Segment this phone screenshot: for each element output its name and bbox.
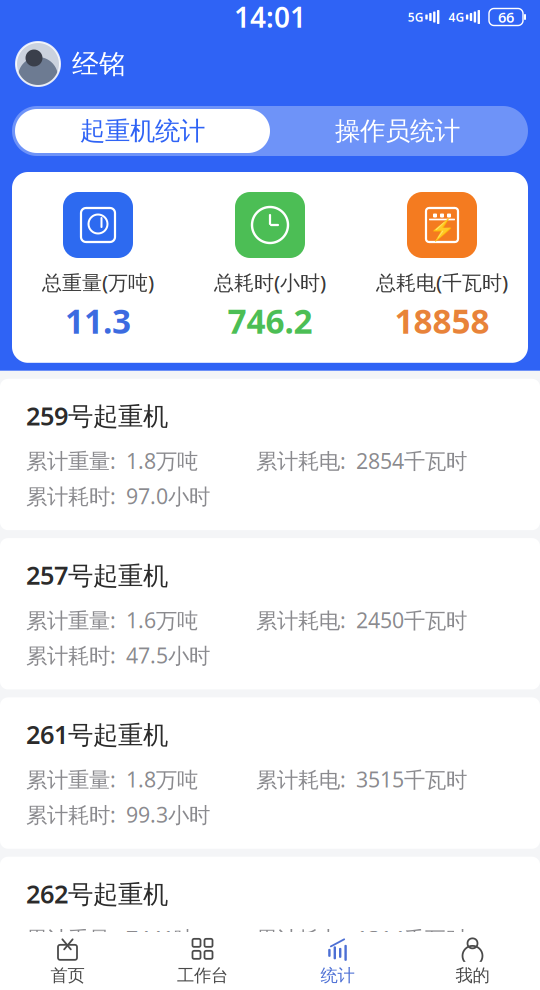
staticText: 总重量(万吨) xyxy=(42,269,154,296)
staticText: 257号起重机 xyxy=(26,558,168,592)
staticText: 262号起重机 xyxy=(26,877,168,910)
staticText: 操作员统计 xyxy=(335,115,460,146)
staticText: 累计耗电: xyxy=(256,924,346,953)
staticText: 259号起重机 xyxy=(26,399,168,432)
button[interactable]: 261号起重机 xyxy=(0,697,540,849)
staticText: 47.5小时 xyxy=(126,641,210,669)
staticText: 统计 xyxy=(320,965,354,986)
staticText: 经铭 xyxy=(72,48,126,80)
staticText: 起重机统计 xyxy=(80,115,205,146)
staticText: 1.8万吨 xyxy=(126,446,198,475)
button[interactable]: 操作员统计 xyxy=(270,109,525,153)
button[interactable]: 257号起重机 xyxy=(0,538,540,689)
staticText: 14:01 xyxy=(234,0,306,36)
staticText: 累计耗时: xyxy=(26,641,116,669)
staticText: 746.2 xyxy=(227,299,312,343)
staticText: 66 xyxy=(498,7,514,27)
staticText: 99.3小时 xyxy=(126,800,210,829)
staticText: 累计重量: xyxy=(26,446,116,475)
staticText: 累计重量: xyxy=(26,606,116,634)
button[interactable]: 262号起重机 xyxy=(0,857,540,990)
staticText: 累计耗电: xyxy=(256,446,346,475)
button[interactable]: 259号起重机 xyxy=(0,379,540,530)
staticText: 累计耗时: xyxy=(26,800,116,829)
staticText: 4G xyxy=(448,9,464,25)
staticText: 2854千瓦时 xyxy=(356,446,467,475)
staticText: 我的 xyxy=(455,965,489,986)
staticText: 5G xyxy=(408,9,424,25)
button[interactable]: 起重机统计 xyxy=(15,109,270,153)
staticText: 累计耗电: xyxy=(256,765,346,793)
staticText: 21.4小时 xyxy=(126,960,210,988)
staticText: 2450千瓦时 xyxy=(356,606,467,634)
staticText: 1.6万吨 xyxy=(126,606,198,634)
staticText: 1.8万吨 xyxy=(126,765,198,793)
staticText: ⚡ xyxy=(428,217,455,242)
staticText: 总耗电(千瓦时) xyxy=(376,269,508,296)
button[interactable]: 我的 xyxy=(405,932,540,990)
staticText: 1314千瓦时 xyxy=(356,924,467,953)
button[interactable]: 首页 xyxy=(0,932,135,990)
staticText: 7441吨 xyxy=(126,924,195,953)
staticText: 累计耗时: xyxy=(26,482,116,510)
staticText: 累计耗电: xyxy=(256,606,346,634)
staticText: 工作台 xyxy=(177,965,228,986)
button[interactable]: 经铭 xyxy=(16,42,126,86)
staticText: 总耗时(小时) xyxy=(214,269,326,296)
button[interactable]: 工作台 xyxy=(135,932,270,990)
staticText: 11.3 xyxy=(65,299,131,343)
staticText: 累计重量: xyxy=(26,765,116,793)
staticText: 261号起重机 xyxy=(26,717,168,751)
staticText: 首页 xyxy=(50,965,84,986)
button[interactable]: 统计 xyxy=(270,932,405,990)
staticText: 3515千瓦时 xyxy=(356,765,467,793)
staticText: 累计重量: xyxy=(26,924,116,953)
staticText: 97.0小时 xyxy=(126,482,210,510)
staticText: 累计耗时: xyxy=(26,960,116,988)
staticText: 18858 xyxy=(394,299,489,343)
